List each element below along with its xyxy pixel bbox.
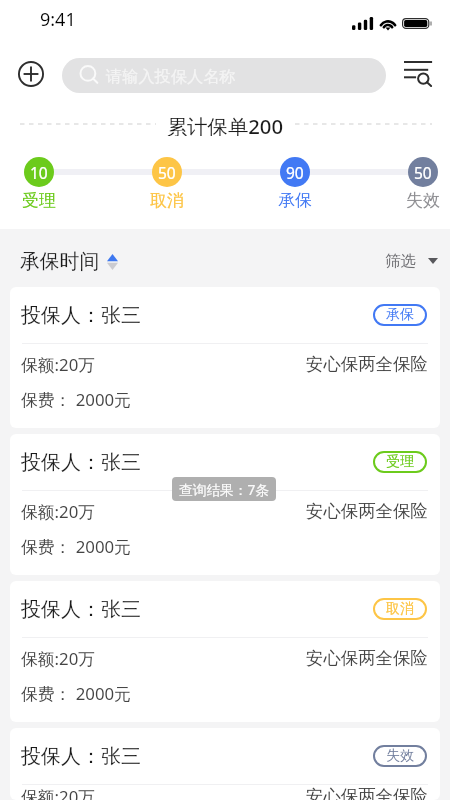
button[interactable]: 90 (263, 157, 327, 211)
button[interactable]: 投保人：张三 (10, 434, 440, 575)
button[interactable]: 50 (135, 157, 199, 211)
button[interactable]: 请输入投保人名称 (62, 58, 386, 93)
staticText: 保额:20万 (21, 353, 96, 376)
staticText: 筛选 (385, 251, 416, 271)
staticText: 保费： 2000元 (21, 388, 131, 411)
staticText: 50 (158, 162, 176, 183)
button[interactable]: 投保人：张三 (10, 287, 440, 428)
staticText: 保额:20万 (21, 500, 96, 523)
staticText: 安心保两全保险 (306, 500, 428, 522)
staticText: 安心保两全保险 (306, 353, 428, 375)
staticText: 受理 (22, 190, 56, 211)
staticText: 累计保单200 (167, 112, 284, 136)
staticText: 保费： 2000元 (21, 535, 131, 558)
staticText: 9:41 (40, 7, 76, 32)
staticText: 安心保两全保险 (306, 647, 428, 669)
button[interactable]: 50 (391, 157, 450, 211)
staticText: 查询结果：7条 (179, 480, 269, 499)
staticText: 承保时间 (20, 249, 100, 274)
button[interactable]: 投保人：张三 (10, 581, 440, 722)
staticText: 保费： 2000元 (21, 682, 131, 705)
staticText: 失效 (406, 190, 440, 211)
button[interactable]: Add policy (13, 56, 48, 91)
staticText: 承保 (278, 190, 312, 211)
staticText: 投保人：张三 (21, 744, 141, 769)
staticText: 保额:20万 (21, 647, 96, 670)
staticText: 50 (414, 162, 432, 183)
staticText: 失效 (386, 747, 414, 765)
button[interactable]: 投保人：张三 (10, 728, 440, 800)
staticText: 90 (286, 162, 304, 183)
button[interactable]: Filter and search (399, 58, 438, 90)
staticText: 投保人：张三 (21, 597, 141, 622)
staticText: 投保人：张三 (21, 303, 141, 328)
staticText: 安心保两全保险 (306, 785, 428, 800)
staticText: 10 (30, 162, 48, 183)
staticText: 取消 (386, 600, 414, 618)
staticText: 取消 (150, 190, 184, 211)
button[interactable]: 承保时间 (20, 249, 118, 274)
staticText: 投保人：张三 (21, 450, 141, 475)
staticText: 保额:20万 (21, 785, 96, 800)
button[interactable]: 10 (7, 157, 71, 211)
staticText: 承保 (386, 306, 414, 324)
button[interactable]: 筛选 (385, 251, 438, 271)
staticText: 请输入投保人名称 (106, 66, 236, 86)
staticText: 受理 (386, 453, 414, 471)
